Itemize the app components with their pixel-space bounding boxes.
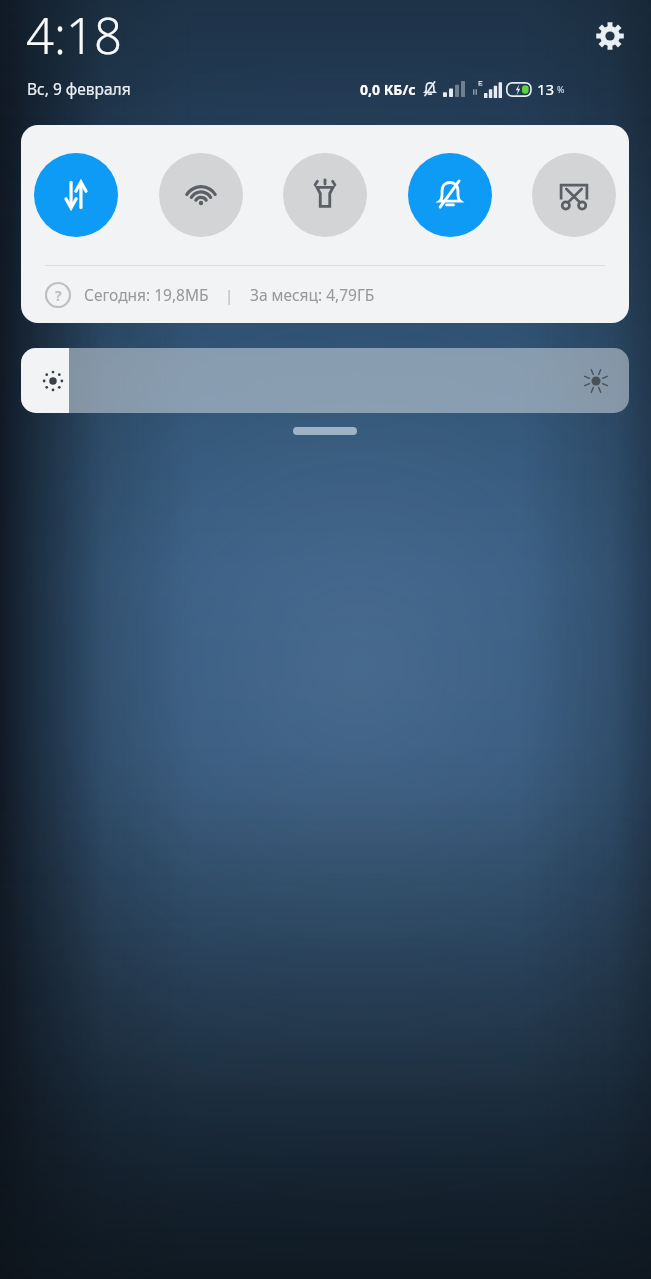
staticText: Сегодня: 19,8МБ [84, 284, 209, 305]
staticText: 13 [537, 79, 555, 99]
button[interactable]: Expand panel [293, 427, 357, 435]
button[interactable]: Screenshot [532, 153, 616, 237]
staticText: 0,0 КБ/c [360, 80, 416, 99]
button[interactable]: Flashlight [283, 153, 367, 237]
button[interactable]: Wi-Fi [159, 153, 243, 237]
staticText: % [557, 83, 565, 95]
staticText: ? [55, 286, 62, 305]
button[interactable]: Silent mode [408, 153, 492, 237]
button[interactable]: Settings [589, 15, 631, 57]
staticText: | [225, 285, 234, 305]
staticText: 4:18 [26, 2, 122, 69]
button[interactable]: Brightness [21, 348, 629, 413]
button[interactable]: ? [21, 266, 629, 323]
staticText: За месяц: 4,79ГБ [250, 284, 375, 305]
button[interactable]: Mobile data [34, 153, 118, 237]
staticText: Вс, 9 февраля [27, 78, 131, 99]
